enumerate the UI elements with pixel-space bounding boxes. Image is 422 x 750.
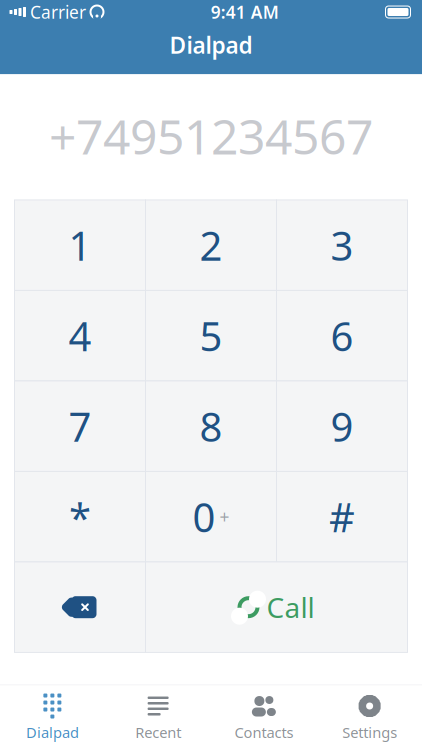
staticText: Dialpad	[26, 722, 79, 742]
staticText: *	[69, 490, 91, 543]
button[interactable]: 7	[14, 381, 145, 471]
staticText: Settings	[342, 722, 397, 742]
staticText: 5	[199, 309, 222, 362]
staticText: Recent	[135, 722, 181, 742]
button[interactable]: Contacts	[211, 685, 317, 750]
button[interactable]: 9	[276, 381, 407, 471]
staticText: Call	[266, 589, 314, 626]
button[interactable]: 8	[145, 381, 276, 471]
button[interactable]: 5	[145, 290, 276, 381]
staticText: 1	[68, 219, 91, 272]
button[interactable]: 1	[14, 200, 145, 290]
staticText: 3	[330, 219, 353, 272]
staticText: 7	[68, 400, 91, 453]
button[interactable]: Call	[145, 562, 407, 652]
button[interactable]: Recent	[105, 685, 211, 750]
button[interactable]: Dialpad	[0, 685, 105, 750]
staticText: +74951234567	[49, 104, 373, 168]
button[interactable]: Delete	[14, 562, 145, 652]
staticText: Carrier	[30, 0, 86, 23]
button[interactable]: 4	[14, 290, 145, 381]
staticText: 6	[330, 309, 353, 362]
staticText: Dialpad	[169, 30, 252, 60]
button[interactable]: 3	[276, 200, 407, 290]
staticText: 9:41 AM	[211, 0, 279, 23]
staticText: 9	[330, 400, 353, 453]
staticText: #	[329, 490, 355, 543]
staticText: 0	[192, 490, 215, 543]
staticText: 4	[68, 309, 91, 362]
staticText: Contacts	[234, 722, 293, 742]
button[interactable]: Settings	[317, 685, 422, 750]
button[interactable]: *	[14, 471, 145, 562]
staticText: +	[219, 505, 229, 528]
button[interactable]: 6	[276, 290, 407, 381]
button[interactable]: 2	[145, 200, 276, 290]
staticText: 2	[199, 219, 222, 272]
button[interactable]: #	[276, 471, 407, 562]
staticText: 8	[199, 400, 222, 453]
button[interactable]: 0	[145, 471, 276, 562]
